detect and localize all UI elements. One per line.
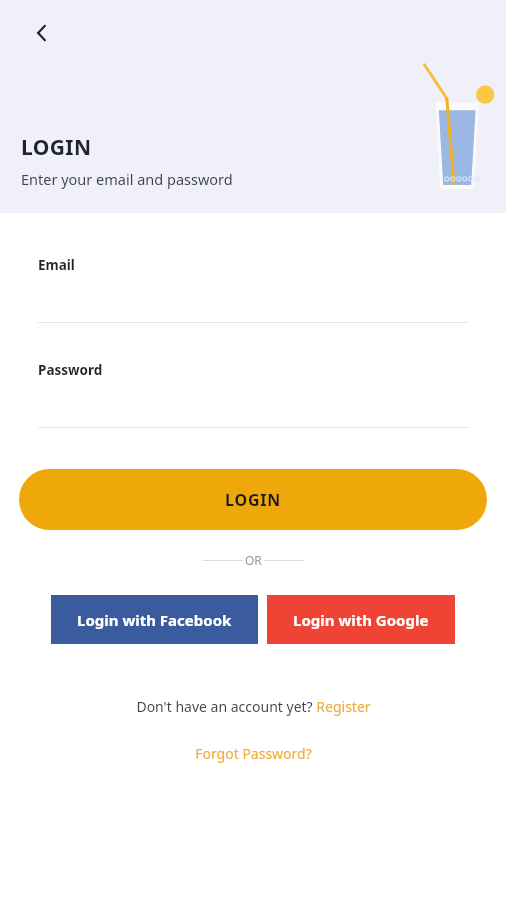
staticText: LOGIN xyxy=(225,489,282,511)
staticText: Password xyxy=(38,361,103,379)
staticText: LOGIN xyxy=(21,133,92,162)
staticText: Enter your email and password xyxy=(21,169,233,189)
button[interactable]: Login with Facebook xyxy=(51,595,258,644)
button[interactable]: Forgot Password? xyxy=(0,744,506,763)
button[interactable]: LOGIN xyxy=(19,469,487,530)
staticText: Don't have an account yet? Register xyxy=(136,697,371,716)
staticText: Forgot Password? xyxy=(195,744,312,763)
button[interactable]: Login with Google xyxy=(267,595,455,644)
staticText: OR xyxy=(245,552,262,568)
staticText: Login with Google xyxy=(293,610,429,630)
button[interactable]: Back xyxy=(20,11,64,55)
staticText: Login with Facebook xyxy=(77,610,232,630)
button[interactable]: Don't have an account yet? Register xyxy=(0,697,506,716)
staticText: Email xyxy=(38,256,75,274)
